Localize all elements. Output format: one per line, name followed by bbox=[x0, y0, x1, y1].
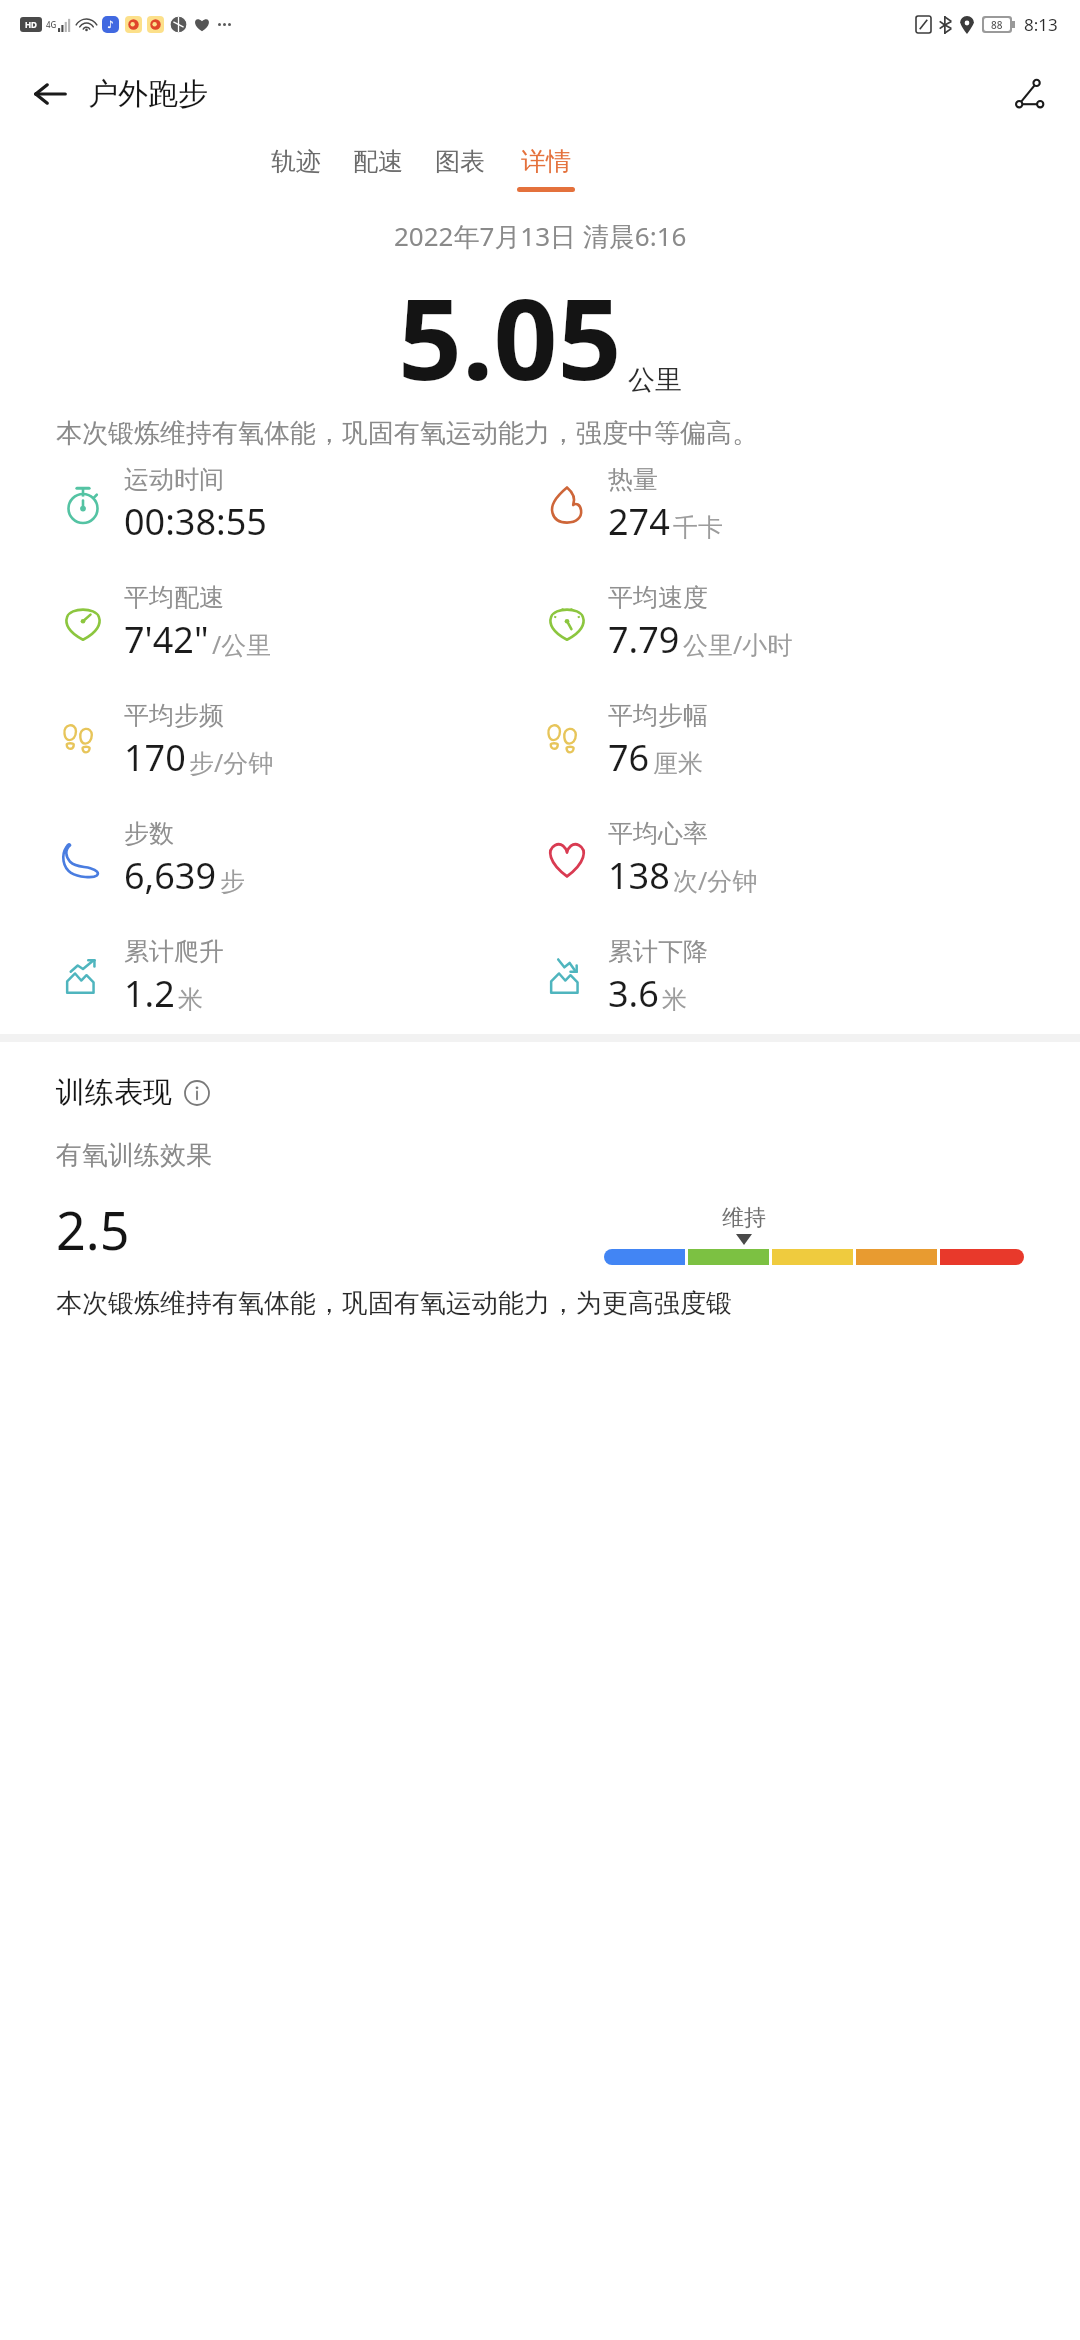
staticText: 累计爬升 bbox=[124, 936, 224, 967]
staticText: 7.79 bbox=[608, 615, 680, 664]
staticText: 运动时间 bbox=[124, 464, 224, 495]
staticText: 6,639 bbox=[124, 851, 217, 900]
staticText: 配速 bbox=[353, 146, 403, 177]
staticText: /公里 bbox=[212, 627, 272, 661]
button[interactable]: 图表 bbox=[419, 140, 501, 193]
button[interactable]: Share bbox=[1002, 66, 1058, 122]
staticText: 千卡 bbox=[673, 512, 723, 543]
button[interactable]: 平均步幅 bbox=[540, 700, 1024, 782]
staticText: 170 bbox=[124, 733, 186, 782]
staticText: 公里 bbox=[628, 363, 682, 397]
staticText: 00:38:55 bbox=[124, 497, 267, 546]
button[interactable]: 运动时间 bbox=[56, 464, 540, 546]
staticText: 3.6 bbox=[608, 969, 659, 1018]
staticText: 训练表现 bbox=[56, 1074, 172, 1111]
button[interactable]: 配速 bbox=[337, 140, 419, 193]
staticText: 76 bbox=[608, 733, 650, 782]
staticText: 本次锻炼维持有氧体能，巩固有氧运动能力，强度中等偏高。 bbox=[56, 417, 1024, 450]
button[interactable]: 累计爬升 bbox=[56, 936, 540, 1018]
button[interactable]: 累计下降 bbox=[540, 936, 1024, 1018]
staticText: 7'42" bbox=[124, 615, 209, 664]
staticText: 厘米 bbox=[653, 748, 703, 779]
staticText: 步数 bbox=[124, 818, 174, 849]
staticText: 次/分钟 bbox=[673, 863, 758, 897]
staticText: 步 bbox=[220, 866, 245, 897]
staticText: 步/分钟 bbox=[189, 745, 274, 779]
staticText: 8:13 bbox=[1024, 13, 1058, 36]
staticText: 本次锻炼维持有氧体能，巩固有氧运动能力，为更高强度锻 bbox=[56, 1287, 732, 1320]
button[interactable]: 平均速度 bbox=[540, 582, 1024, 664]
staticText: 2022年7月13日 清晨6:16 bbox=[394, 218, 687, 254]
staticText: 热量 bbox=[608, 464, 658, 495]
button[interactable]: 详情 bbox=[501, 140, 591, 198]
staticText: 平均心率 bbox=[608, 818, 708, 849]
staticText: 274 bbox=[608, 497, 670, 546]
staticText: 米 bbox=[178, 984, 203, 1015]
staticText: 5.05 bbox=[398, 260, 622, 413]
staticText: 公里/小时 bbox=[683, 627, 793, 661]
staticText: 米 bbox=[662, 984, 687, 1015]
staticText: 平均步幅 bbox=[608, 700, 708, 731]
staticText: 户外跑步 bbox=[88, 75, 208, 113]
button[interactable]: 平均配速 bbox=[56, 582, 540, 664]
staticText: 平均步频 bbox=[124, 700, 224, 731]
button[interactable]: 步数 bbox=[56, 818, 540, 900]
staticText: 维持 bbox=[722, 1204, 766, 1232]
staticText: 138 bbox=[608, 851, 670, 900]
button[interactable]: 轨迹 bbox=[255, 140, 337, 193]
staticText: 2.5 bbox=[56, 1194, 130, 1265]
button[interactable]: Back bbox=[22, 66, 78, 122]
staticText: HD bbox=[25, 19, 37, 30]
button[interactable]: 平均步频 bbox=[56, 700, 540, 782]
button[interactable]: 平均心率 bbox=[540, 818, 1024, 900]
button[interactable]: 热量 bbox=[540, 464, 1024, 546]
staticText: 轨迹 bbox=[271, 146, 321, 177]
staticText: 4G bbox=[46, 19, 57, 30]
staticText: 累计下降 bbox=[608, 936, 708, 967]
staticText: 图表 bbox=[435, 146, 485, 177]
staticText: 1.2 bbox=[124, 969, 175, 1018]
staticText: 平均速度 bbox=[608, 582, 708, 613]
staticText: 有氧训练效果 bbox=[56, 1139, 212, 1172]
button[interactable]: Info bbox=[182, 1078, 212, 1108]
staticText: 88 bbox=[991, 18, 1003, 31]
staticText: 平均配速 bbox=[124, 582, 224, 613]
staticText: 详情 bbox=[521, 146, 571, 177]
staticText: ♪ bbox=[107, 19, 114, 31]
